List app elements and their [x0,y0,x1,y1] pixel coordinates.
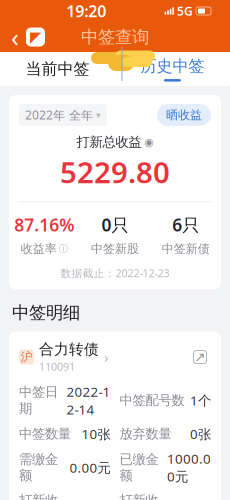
button[interactable]: 晒收益 [157,104,211,126]
staticText: 1个 [190,391,211,409]
staticText: 5229.80 [60,152,170,191]
staticText: 当前中签 [25,59,89,79]
staticText: 1000.00元 [167,450,211,485]
staticText: 中签新债 [162,241,210,256]
staticText: 需缴金额 [19,451,58,484]
staticText: 中签新股 [91,241,139,256]
staticText: 2022-12-14 [66,383,110,418]
staticText: 2022年 全年 [25,107,93,123]
button[interactable]: Home [26,27,45,46]
staticText: 打新收益 [19,492,58,500]
button[interactable]: 2022年 全年 [19,104,107,126]
staticText: 5G [177,3,193,19]
staticText: 6只 [172,213,199,236]
staticText: 晒收益 [166,108,202,122]
staticText: 中签配号数 [119,392,184,409]
staticText: 0张 [190,425,211,443]
staticText: 10张 [81,425,110,443]
staticText: 放弃数量 [119,426,171,442]
staticText: ▾ [96,110,101,120]
staticText: 中签明细 [12,302,80,323]
staticText: ‹ [11,20,19,54]
staticText: 0只 [101,213,128,236]
staticText: 中签查询 [81,26,149,48]
staticText: 已缴金额 [119,451,158,484]
staticText: 0.00元 [69,459,110,476]
button[interactable]: Open detail [189,346,211,368]
staticText: 中签日期 [19,384,58,417]
staticText: 收益率 [21,241,57,256]
button[interactable]: 沪 [19,340,189,374]
staticText: 历史中签 [140,56,204,76]
staticText: 沪 [20,350,32,364]
staticText: ↗ [194,349,205,365]
staticText: 中签数量 [19,426,71,442]
staticText: › [104,347,109,367]
staticText: ◤ [30,29,41,45]
staticText: 数据截止：2022-12-23 [60,266,169,280]
staticText: 打新收益率 [119,492,158,500]
staticText: 合力转债 [39,340,99,358]
button[interactable]: 当前中签 [0,52,115,86]
button[interactable]: Back [8,24,22,50]
staticText: ⓘ [59,243,68,254]
staticText: 打新总收益 [76,134,141,150]
staticText: 110091 [39,359,75,374]
staticText: 87.16% [14,213,74,236]
staticText: ◉ [144,136,153,148]
button[interactable]: 历史中签 [115,52,230,86]
staticText: 19:20 [66,0,106,22]
